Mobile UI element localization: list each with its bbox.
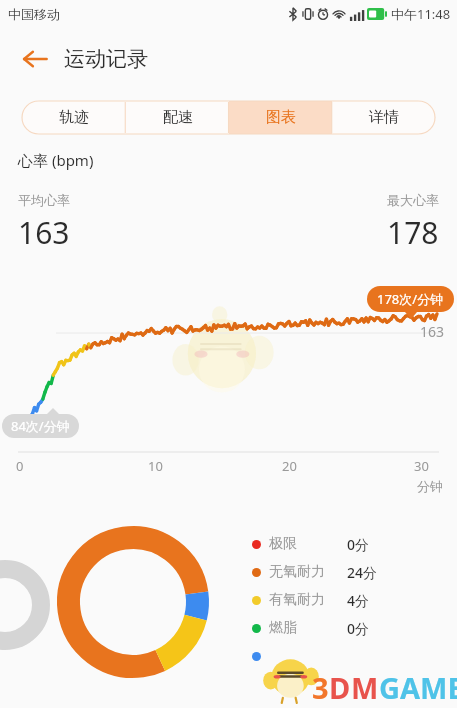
button[interactable]: 有氧耐力	[252, 586, 437, 614]
staticText: 运动记录	[64, 46, 148, 72]
staticText: 10	[148, 457, 163, 475]
staticText: 图表	[266, 108, 296, 127]
staticText: 178次/分钟	[377, 290, 444, 308]
staticText: 中国移动	[8, 6, 60, 22]
button[interactable]: 无氧耐力	[252, 558, 437, 586]
staticText: 30	[414, 457, 429, 475]
staticText: 163	[18, 212, 70, 253]
staticText: 燃脂	[269, 619, 347, 637]
button[interactable]: 详情	[332, 101, 435, 134]
button[interactable]: 图表	[229, 101, 332, 134]
staticText: 有氧耐力	[269, 591, 347, 609]
staticText: GAME	[379, 668, 457, 707]
staticText: 无氧耐力	[269, 563, 347, 581]
button[interactable]: Back	[14, 38, 56, 80]
staticText: M	[351, 668, 379, 707]
staticText: 24分	[347, 563, 378, 582]
staticText: 轨迹	[59, 108, 89, 127]
staticText: 配速	[163, 108, 193, 127]
staticText: 178	[387, 212, 439, 253]
staticText: 20	[282, 457, 297, 475]
staticText: 最大心率	[387, 192, 439, 208]
staticText: 163	[420, 322, 445, 341]
button[interactable]: 轨迹	[22, 101, 126, 134]
button[interactable]	[252, 642, 437, 670]
staticText: 0	[16, 457, 24, 475]
staticText: 3	[312, 668, 329, 707]
staticText: 详情	[369, 108, 399, 127]
staticText: 分钟	[417, 478, 443, 494]
staticText	[269, 647, 347, 666]
button[interactable]: 极限	[252, 530, 437, 558]
button[interactable]: 燃脂	[252, 614, 437, 642]
staticText: 中午11:48	[391, 5, 451, 23]
staticText: 极限	[269, 535, 347, 553]
staticText: 0分	[347, 535, 370, 554]
staticText: 平均心率	[18, 192, 70, 208]
staticText: 0分	[347, 619, 370, 638]
button[interactable]: 配速	[126, 101, 229, 134]
staticText: 84次/分钟	[11, 417, 70, 435]
staticText: 4分	[347, 591, 370, 610]
staticText: D	[329, 668, 351, 707]
staticText: 心率 (bpm)	[18, 150, 94, 170]
